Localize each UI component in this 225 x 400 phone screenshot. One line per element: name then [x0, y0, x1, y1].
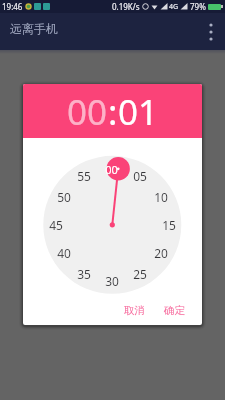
button[interactable]: 确定: [155, 298, 193, 322]
staticText: 00: [105, 162, 118, 177]
staticText: 4G: [169, 2, 179, 12]
staticText: 79%: [190, 1, 206, 12]
staticText: 远离手机: [10, 21, 58, 36]
staticText: 30: [105, 273, 119, 289]
staticText: 35: [77, 266, 91, 282]
staticText: 10: [154, 189, 168, 205]
staticText: 05: [133, 168, 147, 184]
staticText: 40: [57, 245, 71, 261]
button[interactable]: [197, 13, 225, 50]
button[interactable]: 取消: [115, 298, 153, 322]
staticText: 15: [162, 217, 176, 233]
staticText: 50: [57, 189, 71, 205]
staticText: :: [108, 88, 118, 136]
staticText: 01: [118, 88, 159, 136]
staticText: 00: [67, 88, 108, 136]
staticText: 25: [133, 266, 147, 282]
staticText: 55: [77, 168, 91, 184]
staticText: 20: [154, 245, 168, 261]
staticText: 45: [49, 217, 63, 233]
staticText: 取消: [124, 304, 145, 317]
staticText: 19:46: [2, 1, 23, 12]
staticText: 确定: [164, 304, 185, 317]
staticText: 0.19K/s: [112, 1, 140, 12]
